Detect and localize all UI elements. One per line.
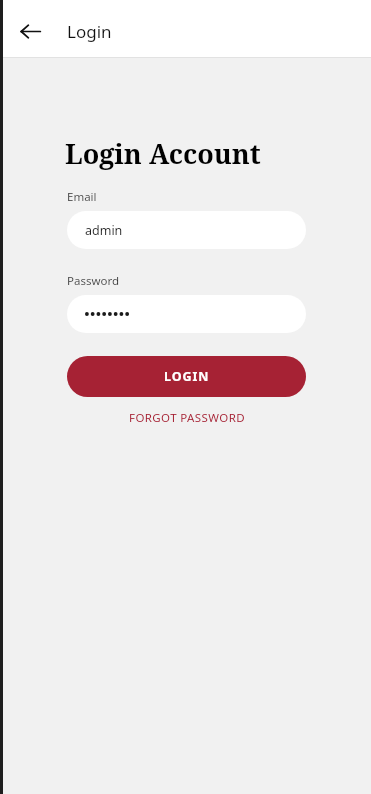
staticText: FORGOT PASSWORD <box>129 410 245 426</box>
button[interactable]: LOGIN <box>67 356 306 397</box>
staticText: admin <box>85 222 123 239</box>
staticText: Email <box>67 189 97 205</box>
staticText: Login Account <box>65 135 261 172</box>
button[interactable]: FORGOT PASSWORD <box>67 407 306 429</box>
staticText: Login <box>67 20 112 43</box>
button[interactable]: Back <box>14 15 46 47</box>
staticText: Password <box>67 273 120 289</box>
staticText: LOGIN <box>164 368 210 385</box>
button[interactable] <box>67 295 306 333</box>
button[interactable]: admin <box>67 211 306 249</box>
